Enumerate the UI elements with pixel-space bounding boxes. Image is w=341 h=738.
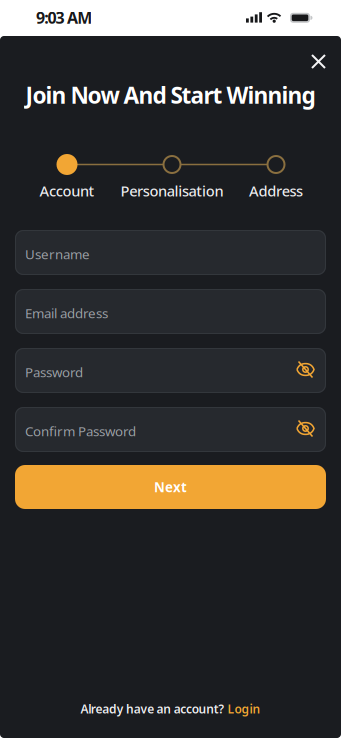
staticText: Account [39,181,95,200]
staticText: Login [228,701,261,717]
button[interactable]: Next [15,465,326,509]
button[interactable]: Already have an account? [80,701,260,717]
staticText: Join Now And Start Winning [25,80,315,110]
staticText: Username [25,245,90,263]
staticText: Password [25,363,83,381]
button[interactable]: Show password [292,416,319,443]
staticText: Confirm Password [25,422,136,440]
staticText: Address [249,181,303,200]
staticText: 9:03 AM [36,7,92,28]
staticText: Already have an account? [80,701,224,717]
staticText: Next [154,478,187,496]
button[interactable]: Show password [292,357,319,384]
staticText: Email address [25,304,108,322]
staticText: Personalisation [121,181,223,200]
button[interactable]: Close [305,48,332,75]
